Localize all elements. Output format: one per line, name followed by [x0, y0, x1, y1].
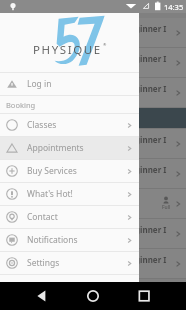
- staticText: Physique 57 Signature - Beginner I: [30, 164, 167, 175]
- button[interactable]: 2:00: [0, 48, 186, 77]
- button[interactable]: Log in: [0, 73, 139, 95]
- other: Class full: [158, 196, 174, 211]
- button[interactable]: 2:00: [0, 129, 186, 158]
- staticText: Classes: [27, 119, 57, 131]
- staticText: Xiu Kenneth: [30, 175, 65, 183]
- staticText: PM: [10, 205, 20, 213]
- button[interactable]: What's Hot!: [0, 183, 139, 205]
- staticText: Xiu Kenneth: [30, 205, 65, 213]
- staticText: Xiu Kenneth: [30, 94, 65, 102]
- staticText: Physique 57 Signature - Beginner I: [30, 254, 167, 265]
- staticText: Physique 57 Signature - Beginner I: [30, 23, 167, 34]
- staticText: Buy Services: [27, 165, 77, 177]
- button[interactable]: Buy Services: [0, 160, 139, 182]
- button[interactable]: 2:00: [0, 18, 186, 47]
- staticText: Physique 57 Signature - Beginner I: [30, 194, 158, 205]
- button[interactable]: Settings: [0, 252, 139, 274]
- staticText: Xiu Kenneth: [30, 145, 65, 153]
- staticText: 2:00: [7, 83, 23, 94]
- button[interactable]: 2:00: [0, 78, 186, 107]
- staticText: 2:00: [7, 254, 23, 265]
- staticText: Physique 57 Signature - Beginner I: [30, 134, 167, 145]
- staticText: What's Hot!: [27, 188, 73, 200]
- staticText: © 2018 - Physique 57 Degrees: [0, 297, 139, 304]
- staticText: Xiu Kenneth: [30, 34, 65, 42]
- button[interactable]: 2:00: [0, 159, 186, 188]
- staticText: Full: [162, 204, 171, 211]
- staticText: 2:00: [7, 134, 23, 145]
- staticText: Notifications: [27, 234, 78, 246]
- button[interactable]: Appointments: [0, 137, 139, 159]
- staticText: Booking: [6, 100, 36, 110]
- staticText: 2:00: [7, 164, 23, 175]
- staticText: Physique 57 Signature - Beginner I: [30, 83, 167, 94]
- staticText: PM: [10, 145, 20, 153]
- staticText: Xiu Kenneth: [30, 235, 65, 243]
- button[interactable]: 2:00: [0, 249, 186, 278]
- staticText: ®: [103, 42, 107, 47]
- staticText: Settings: [27, 257, 60, 269]
- staticText: PM: [10, 175, 20, 183]
- button[interactable]: Classes: [0, 114, 139, 136]
- staticText: PM: [10, 265, 20, 273]
- button[interactable]: 2:00: [0, 189, 186, 218]
- staticText: PM: [10, 94, 20, 102]
- button[interactable]: Contact: [0, 206, 139, 228]
- button[interactable]: 2:00: [0, 219, 186, 248]
- staticText: 2:00: [7, 224, 23, 235]
- staticText: PHYSIQUE: [33, 42, 102, 58]
- staticText: Xiu Kenneth: [30, 265, 65, 273]
- button[interactable]: Notifications: [0, 229, 139, 251]
- staticText: Physique 57 Signature - Beginner I: [30, 224, 167, 235]
- staticText: 2:00: [7, 194, 23, 205]
- staticText: Physique 57 Signature - Beginner I: [30, 53, 167, 64]
- staticText: Appointments: [27, 142, 84, 154]
- staticText: 14:35: [164, 2, 184, 12]
- staticText: Log in: [27, 78, 52, 90]
- staticText: Contact: [27, 211, 58, 223]
- staticText: PM: [10, 235, 20, 243]
